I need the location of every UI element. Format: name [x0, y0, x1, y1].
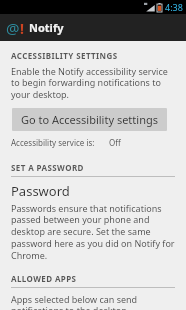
staticText: SET A PASSWORD	[11, 162, 84, 173]
button[interactable]: @	[0, 14, 186, 41]
staticText: @	[6, 18, 20, 38]
staticText: ACCESSIBILITY SETTINGS	[11, 50, 118, 61]
staticText: ALLOWED APPS	[11, 273, 77, 284]
staticText: 4:38	[165, 1, 183, 13]
staticText: Go to Accessibility settings	[21, 112, 158, 127]
staticText: Notify	[29, 20, 64, 35]
staticText: Accessibility service is:	[11, 137, 95, 148]
button[interactable]: Go to Accessibility settings	[12, 108, 167, 131]
staticText: Off	[109, 137, 121, 148]
button[interactable]: Password	[11, 182, 70, 200]
staticText: Enable the Notify accessibility service …	[11, 65, 175, 101]
staticText: !	[20, 19, 24, 38]
staticText: Apps selected below can send notificatio…	[11, 293, 175, 310]
staticText: Passwords ensure that notifications pass…	[11, 202, 175, 262]
